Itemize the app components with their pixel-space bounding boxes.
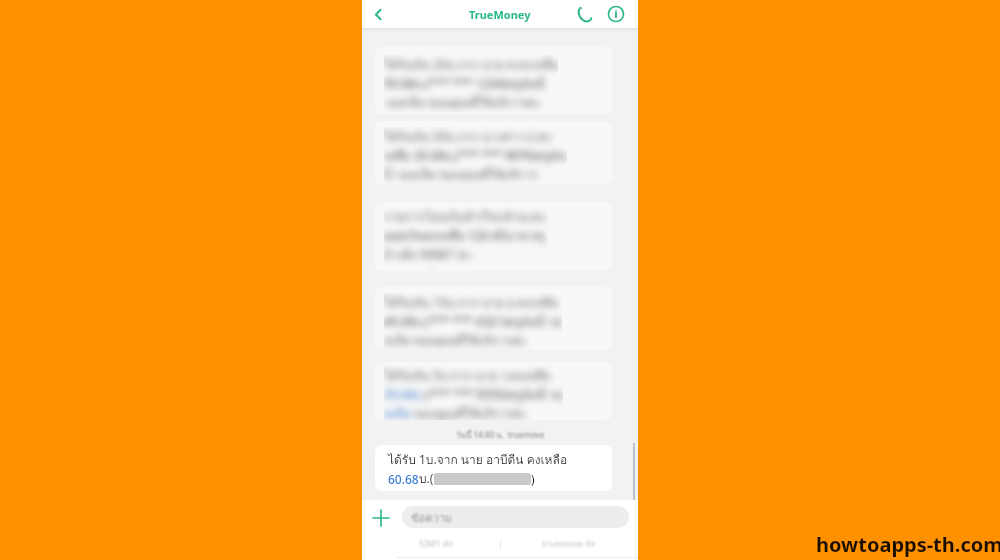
staticText: ได้รับเงิน 20บ.จาก นาย ส.คงเหลือ [384, 55, 558, 74]
button[interactable]: ได้รับ 1บ.จาก นาย อาบีดีน คงเหลือ [375, 445, 612, 491]
button[interactable]: ข้อความ [402, 506, 629, 528]
button[interactable]: truemove ส่ง [504, 534, 634, 554]
staticText: ขอบคุณที่ใช้บริการค่ะ [414, 404, 528, 420]
staticText: อ้างอิง 99887 ค่ะ [384, 245, 472, 264]
staticText: ได้รับเงิน 50บ.จาก นางสาว ป.คง [384, 127, 552, 146]
staticText: วันนี้ 14:40 น. truemove [456, 429, 545, 442]
button[interactable]: ได้รับเงิน 5บ.จาก นาย ว.คงเหลือ [375, 362, 612, 420]
staticText: ยอดเงินคงเหลือ 120.45บาท ทรู [384, 226, 546, 245]
staticText: วอลเล็ท ขอบคุณที่ใช้บริการค่ะ [384, 93, 541, 112]
staticText: ) [531, 471, 535, 487]
staticText: ได้รับเงิน 5บ.จาก นาย ว.คงเหลือ [384, 366, 551, 385]
staticText: ได้รับ 1บ.จาก นาย อาบีดีน คงเหลือ [388, 450, 568, 469]
staticText: 60.68 [388, 471, 419, 487]
button[interactable]: Add attachment [370, 507, 392, 529]
staticText: นี่ วอลเล็ท ขอบคุณที่ใช้บริการ [384, 165, 538, 184]
staticText: ข้อความ [411, 509, 453, 526]
staticText: truemove ส่ง [542, 537, 596, 551]
button[interactable]: Info [602, 0, 630, 28]
staticText: 59.68บ [384, 385, 423, 404]
staticText: ลเล็ท ขอบคุณที่ใช้บริการค่ะ [384, 331, 527, 350]
staticText: howtoapps-th.com [816, 531, 1000, 558]
staticText: 59.68บ.(*** *** 1234)ทรูมันนี่ [384, 74, 545, 93]
staticText: TrueMoney [469, 7, 531, 22]
staticText: รายการโอนเงินสำเร็จแล้วนะคะ [384, 207, 548, 226]
staticText: บ.( [419, 469, 434, 488]
staticText: .(*** *** 5555)ทรูมันนี่ วอ [423, 385, 563, 404]
staticText: ลเล็ท [384, 404, 414, 420]
button[interactable]: ได้รับเงิน 20บ.จาก นาย ส.คงเหลือ [375, 47, 612, 114]
staticText: เหลือ 39.68บ.(*** *** 9876)ทรูมัน [384, 146, 567, 165]
button[interactable]: SIM1 ส่ง [370, 534, 501, 554]
button[interactable]: ได้รับเงิน 10บ.จาก นาย อ.คงเหลือ [375, 287, 612, 350]
staticText: 49.68บ.(*** *** 4321)ทรูมันนี่ วอ [384, 312, 562, 331]
button[interactable]: Call [570, 0, 598, 28]
staticText: SIM1 ส่ง [419, 537, 453, 551]
button[interactable]: Back [366, 0, 390, 28]
staticText: ได้รับเงิน 10บ.จาก นาย อ.คงเหลือ [384, 293, 558, 312]
button[interactable]: รายการโอนเงินสำเร็จแล้วนะคะ [375, 202, 612, 271]
button[interactable]: ได้รับเงิน 50บ.จาก นางสาว ป.คง [375, 121, 612, 184]
